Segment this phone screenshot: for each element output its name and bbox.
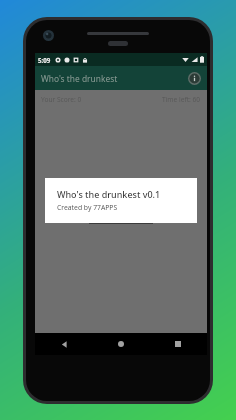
button[interactable]: Who's the drunkest v0.1 (45, 178, 197, 223)
button[interactable]: Recent apps (167, 333, 189, 355)
staticText: Created by 77APPS (57, 203, 118, 212)
staticText: Your Score: 0 (41, 95, 82, 104)
staticText: 5:09 (38, 56, 51, 64)
button[interactable]: Back (53, 333, 75, 355)
staticText: Who's the drunkest v0.1 (57, 188, 161, 200)
button[interactable]: About this app (187, 71, 202, 86)
button[interactable]: Home (110, 333, 132, 355)
staticText: Time left: 60 (162, 95, 201, 104)
staticText: Who's the drunkest (41, 73, 118, 84)
